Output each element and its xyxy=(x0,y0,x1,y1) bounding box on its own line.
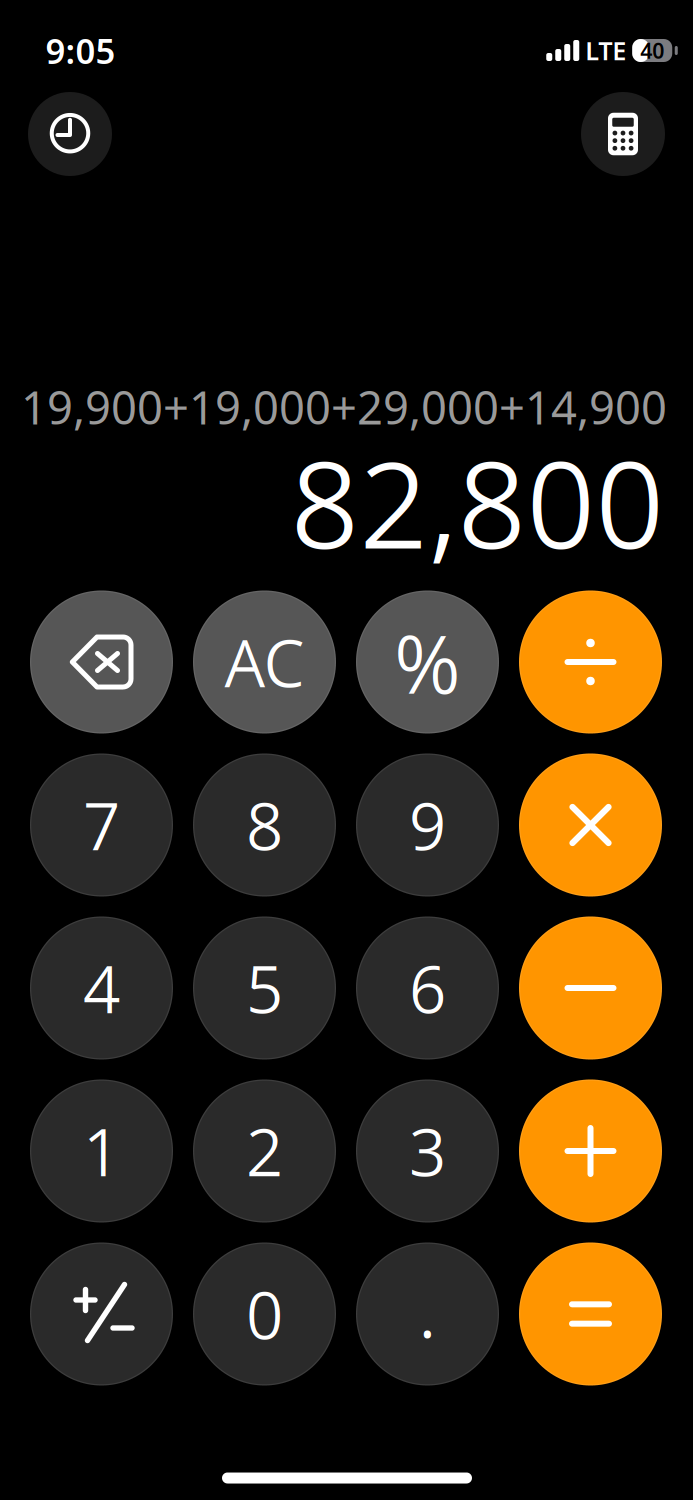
button[interactable]: 4 xyxy=(30,916,173,1059)
button[interactable]: Equals xyxy=(519,1242,662,1385)
staticText: 40 xyxy=(640,36,664,65)
button[interactable]: 2 xyxy=(193,1079,336,1222)
staticText: 7 xyxy=(83,780,120,869)
button[interactable]: Add xyxy=(519,1079,662,1222)
button[interactable]: Subtract xyxy=(519,916,662,1059)
staticText: 4 xyxy=(83,943,120,1032)
staticText: 8 xyxy=(246,780,283,869)
button[interactable]: 0 xyxy=(193,1242,336,1385)
button[interactable]: Multiply xyxy=(519,753,662,896)
button[interactable]: Divide xyxy=(519,590,662,733)
staticText: 1 xyxy=(83,1106,120,1195)
button[interactable]: 6 xyxy=(356,916,499,1059)
button[interactable]: 5 xyxy=(193,916,336,1059)
staticText: LTE xyxy=(585,34,626,67)
staticText: % xyxy=(394,607,461,717)
staticText: 82,800 xyxy=(290,420,664,584)
button[interactable]: % xyxy=(356,590,499,733)
staticText: . xyxy=(418,1264,436,1358)
staticText: 9 xyxy=(409,780,446,869)
button[interactable]: Plus or minus xyxy=(30,1242,173,1385)
staticText: 0 xyxy=(246,1269,283,1358)
button[interactable]: 1 xyxy=(30,1079,173,1222)
button[interactable]: 8 xyxy=(193,753,336,896)
button[interactable]: History xyxy=(28,92,112,176)
staticText: 3 xyxy=(409,1106,446,1195)
button[interactable]: 9 xyxy=(356,753,499,896)
button[interactable]: . xyxy=(356,1242,499,1385)
staticText: 9:05 xyxy=(45,27,115,73)
staticText: 2 xyxy=(246,1106,283,1195)
staticText: AC xyxy=(224,617,304,706)
button[interactable]: 3 xyxy=(356,1079,499,1222)
button[interactable]: Delete xyxy=(30,590,173,733)
staticText: 19,900+19,000+29,000+14,900 xyxy=(21,377,667,437)
button[interactable]: Calculator mode xyxy=(581,92,665,176)
staticText: 6 xyxy=(409,943,446,1032)
button[interactable]: 7 xyxy=(30,753,173,896)
staticText: 5 xyxy=(246,943,283,1032)
button[interactable]: AC xyxy=(193,590,336,733)
